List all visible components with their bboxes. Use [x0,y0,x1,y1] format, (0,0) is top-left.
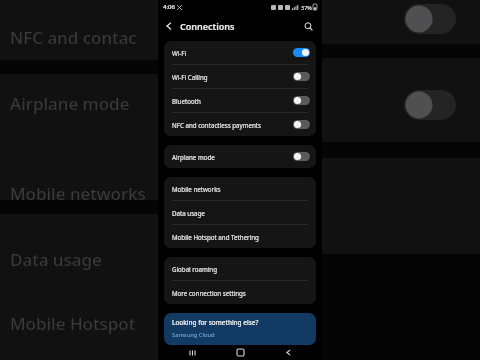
staticText: Airplane mode [172,153,293,161]
button[interactable]: Recents [180,345,206,360]
staticText: Wi-Fi [172,49,293,57]
staticText: Airplane mode [10,92,130,115]
staticText: Mobile Hotspot and Tethering [172,233,259,241]
button[interactable]: Mobile networks [164,177,316,200]
button[interactable]: Search [297,15,319,37]
staticText: Data usage [10,248,102,271]
staticText: NFC and contac [10,26,137,49]
staticText: Connections [180,20,235,32]
button[interactable]: Wi-Fi [164,41,316,64]
button[interactable]: Mobile Hotspot and Tethering [164,225,316,248]
staticText: NFC and contactless payments [172,121,293,129]
staticText: Data usage [172,209,205,217]
button[interactable]: Wi-Fi Calling [164,65,316,88]
staticText: Samsung Cloud [172,331,215,339]
button[interactable]: More connection settings [164,281,316,304]
staticText: More connection settings [172,289,246,297]
button[interactable]: Global roaming [164,257,316,280]
staticText: Global roaming [172,265,217,273]
button[interactable]: Airplane mode [164,145,316,168]
button[interactable]: Data usage [164,201,316,224]
button[interactable]: Home [227,345,253,360]
staticText: Bluetooth [172,97,293,105]
staticText: 4:06 [163,3,175,11]
staticText: Mobile Hotspot [10,312,136,335]
button[interactable]: Looking for something else? [164,313,316,345]
button[interactable]: Back [275,345,301,360]
button[interactable]: Back [158,15,180,37]
staticText: Wi-Fi Calling [172,73,293,81]
staticText: Mobile networks [172,185,221,193]
staticText: 37% [301,4,312,11]
button[interactable]: NFC and contactless payments [164,113,316,136]
staticText: Mobile networks [10,182,146,205]
button[interactable]: Bluetooth [164,89,316,112]
staticText: Looking for something else? [172,318,259,327]
